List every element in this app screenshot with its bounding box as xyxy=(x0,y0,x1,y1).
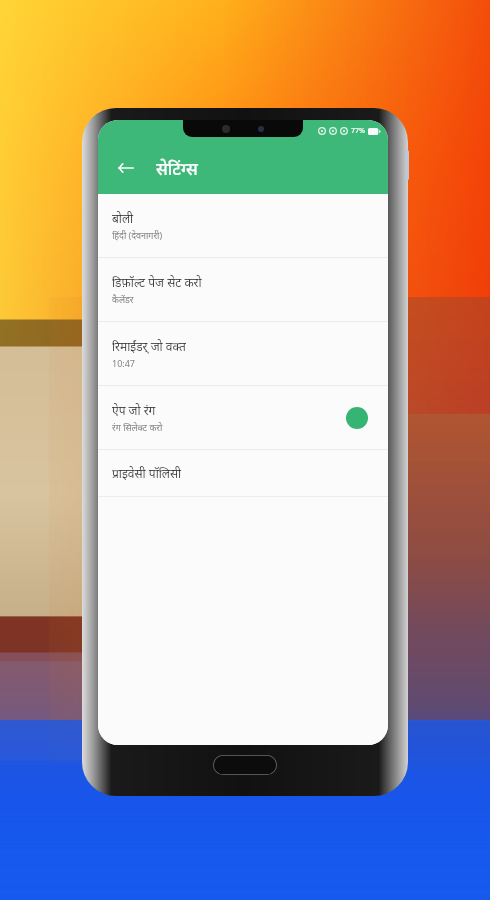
staticText: ऐप जो रंग xyxy=(112,402,156,418)
staticText: बोली xyxy=(112,210,134,226)
button[interactable]: Back xyxy=(106,148,146,188)
staticText: सेटिंग्स xyxy=(156,157,198,180)
staticText: 77% xyxy=(351,126,365,136)
button[interactable]: रिमाईंडर् जो वक्त xyxy=(98,322,388,385)
button[interactable]: Color toggle xyxy=(340,401,374,435)
button[interactable]: बोली xyxy=(98,194,388,257)
button[interactable]: ऐप जो रंग xyxy=(98,386,388,449)
staticText: रिमाईंडर् जो वक्त xyxy=(112,338,186,354)
button[interactable]: प्राइवेसी पॉलिसी xyxy=(98,450,388,496)
staticText: रंग सिलेक्ट करो xyxy=(112,421,163,433)
staticText: कैलेंडर xyxy=(112,293,134,305)
staticText: प्राइवेसी पॉलिसी xyxy=(112,465,182,481)
staticText: 10:47 xyxy=(112,357,136,369)
button[interactable]: डिफ़ॉल्ट पेज सेट करो xyxy=(98,258,388,321)
staticText: डिफ़ॉल्ट पेज सेट करो xyxy=(112,274,202,290)
staticText: हिंदी (देवनागरी) xyxy=(112,229,163,241)
